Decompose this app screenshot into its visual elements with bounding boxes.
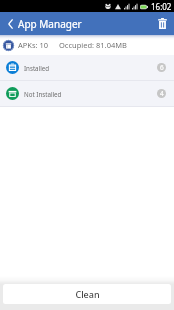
staticText: Occupied: 81.04MB [59,40,127,50]
button[interactable]: Installed [0,55,174,80]
staticText: APKs: 10 [18,40,49,50]
button[interactable]: Not Installed [0,81,174,106]
button[interactable]: App Manager [0,12,88,35]
staticText: Installed [24,64,50,72]
staticText: Not Installed [24,90,62,98]
staticText: 6 [160,63,164,72]
staticText: App Manager [18,17,82,31]
staticText: Clean [75,288,100,300]
staticText: 16:02 [151,1,172,12]
button[interactable]: Delete [150,12,174,35]
staticText: 4 [160,89,164,98]
button[interactable]: Clean [3,284,171,304]
